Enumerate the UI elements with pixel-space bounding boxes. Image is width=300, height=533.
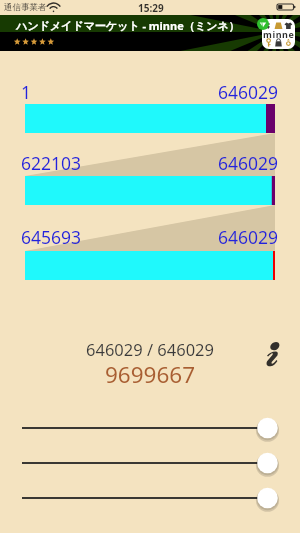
staticText: 1 (21, 80, 32, 104)
staticText: ハンドメイドマーケット - minne（ミンネ） (16, 18, 240, 33)
button[interactable]: Slider (0, 448, 300, 478)
staticText: 645693 (21, 225, 82, 249)
button[interactable]: Info (260, 338, 286, 372)
button[interactable]: minne app icon (262, 19, 295, 49)
staticText: minne (263, 28, 295, 40)
staticText: 15:29 (138, 1, 164, 15)
staticText: 9699667 (0, 359, 300, 390)
staticText: 646029 (218, 151, 279, 175)
staticText: 646029 / 646029 (0, 338, 300, 360)
staticText: 通信事業者 (4, 2, 47, 13)
button[interactable]: Slider (0, 413, 300, 443)
staticText: 646029 (218, 225, 279, 249)
staticText: 622103 (21, 151, 82, 175)
button[interactable]: Slider (0, 483, 300, 513)
staticText: 646029 (218, 80, 279, 104)
